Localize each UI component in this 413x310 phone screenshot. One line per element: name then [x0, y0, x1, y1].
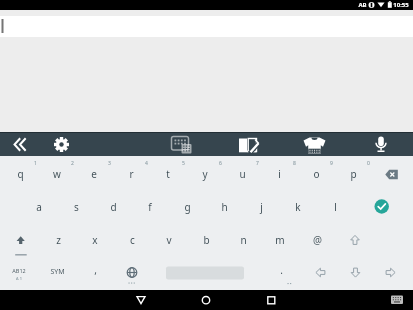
button[interactable]: q	[2, 158, 38, 190]
button[interactable]: n	[225, 224, 261, 256]
button[interactable]	[368, 133, 395, 156]
button[interactable]: g	[169, 191, 205, 223]
staticText: u	[239, 167, 246, 181]
button[interactable]: ,	[77, 255, 113, 285]
staticText: x	[92, 233, 98, 247]
staticText: 4	[145, 160, 148, 167]
button[interactable]	[257, 291, 285, 310]
staticText: 9	[330, 160, 333, 167]
button[interactable]: @	[299, 224, 335, 256]
staticText: p	[350, 167, 357, 181]
button[interactable]	[338, 258, 373, 288]
staticText: w	[53, 167, 61, 181]
button[interactable]: l	[317, 191, 353, 223]
button[interactable]: a	[21, 191, 57, 223]
button[interactable]	[373, 258, 408, 288]
button[interactable]: j	[243, 191, 279, 223]
button[interactable]: .	[263, 255, 299, 285]
button[interactable]	[192, 291, 220, 310]
button[interactable]: i	[261, 158, 297, 190]
staticText: ,	[94, 263, 97, 277]
button[interactable]	[374, 166, 413, 182]
staticText: h	[221, 200, 228, 214]
button[interactable]: SYM	[39, 257, 75, 287]
button[interactable]: h	[206, 191, 242, 223]
staticText: .	[280, 263, 283, 277]
button[interactable]: r	[113, 158, 149, 190]
button[interactable]: b	[188, 224, 224, 256]
button[interactable]: u	[224, 158, 260, 190]
staticText: t	[166, 167, 170, 181]
button[interactable]: y	[187, 158, 223, 190]
button[interactable]: x	[77, 224, 113, 256]
button[interactable]: v	[151, 224, 187, 256]
staticText: y	[202, 167, 208, 181]
button[interactable]: p	[335, 158, 371, 190]
button[interactable]	[337, 224, 373, 256]
staticText: q	[17, 167, 24, 181]
staticText: k	[295, 200, 301, 214]
button[interactable]	[364, 191, 413, 222]
button[interactable]	[301, 133, 328, 156]
staticText: 0	[367, 160, 370, 167]
button[interactable]	[127, 291, 155, 310]
button[interactable]	[167, 133, 194, 156]
staticText: r	[129, 167, 134, 181]
staticText: 8	[293, 160, 296, 167]
staticText: j	[260, 200, 263, 214]
staticText: A 1	[16, 276, 22, 281]
staticText: 7	[256, 160, 259, 167]
staticText: AB	[358, 1, 367, 9]
staticText: 6	[219, 160, 222, 167]
button[interactable]	[3, 224, 39, 256]
button[interactable]: w	[39, 158, 75, 190]
staticText: s	[74, 200, 79, 214]
button[interactable]: d	[95, 191, 131, 223]
button[interactable]	[114, 258, 150, 288]
staticText: z	[56, 233, 61, 247]
staticText: 1	[34, 160, 37, 167]
button[interactable]: c	[114, 224, 150, 256]
staticText: n	[240, 233, 247, 247]
button[interactable]: f	[132, 191, 168, 223]
staticText: o	[313, 167, 320, 181]
staticText: m	[275, 233, 285, 247]
button[interactable]	[6, 133, 33, 156]
button[interactable]: AB12	[2, 264, 36, 276]
button[interactable]: k	[280, 191, 316, 223]
staticText: l	[334, 200, 337, 214]
button[interactable]: m	[262, 224, 298, 256]
staticText: d	[110, 200, 117, 214]
button[interactable]: s	[58, 191, 94, 223]
staticText: f	[148, 200, 152, 214]
button[interactable]: z	[40, 224, 76, 256]
staticText: b	[203, 233, 210, 247]
staticText: 10:55	[393, 1, 409, 9]
button[interactable]	[48, 133, 75, 156]
button[interactable]: o	[298, 158, 334, 190]
button[interactable]	[385, 291, 409, 310]
staticText: 5	[182, 160, 185, 167]
button[interactable]	[303, 258, 338, 288]
button[interactable]: e	[76, 158, 112, 190]
staticText: AB12	[12, 267, 26, 274]
staticText: SYM	[50, 267, 65, 277]
staticText: g	[184, 200, 191, 214]
button[interactable]: t	[150, 158, 186, 190]
staticText: 2	[71, 160, 74, 167]
button[interactable]	[150, 258, 262, 288]
staticText: v	[166, 233, 172, 247]
staticText: e	[91, 167, 97, 181]
button[interactable]	[234, 133, 261, 156]
staticText: 3	[108, 160, 111, 167]
staticText: @	[313, 233, 322, 247]
staticText: i	[278, 167, 281, 181]
staticText: c	[130, 233, 135, 247]
staticText: a	[36, 200, 42, 214]
